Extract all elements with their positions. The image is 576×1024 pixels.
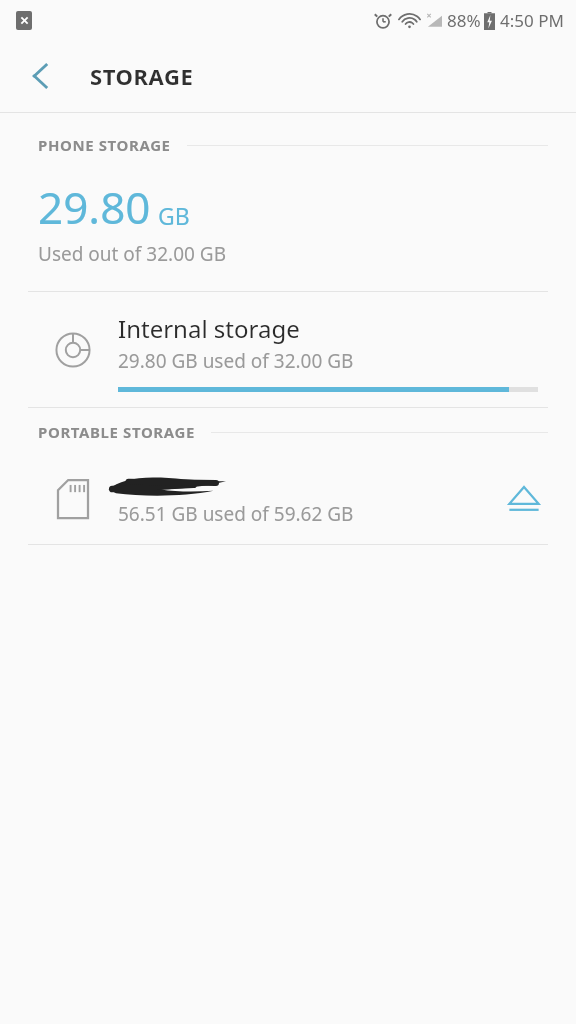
staticText: Internal storage bbox=[118, 312, 300, 345]
staticText: 29.80 GB used of 32.00 GB bbox=[118, 348, 354, 374]
staticText: 56.51 GB used of 59.62 GB bbox=[118, 501, 354, 527]
button[interactable]: Internal storage bbox=[0, 292, 576, 407]
staticText: PHONE STORAGE bbox=[38, 135, 171, 155]
staticText: GB bbox=[158, 200, 190, 231]
button[interactable]: Eject bbox=[496, 471, 552, 527]
staticText: Used out of 32.00 GB bbox=[38, 241, 227, 267]
staticText: 88% bbox=[447, 9, 481, 32]
staticText: PORTABLE STORAGE bbox=[38, 422, 195, 442]
staticText: STORAGE bbox=[90, 61, 194, 91]
button[interactable]: Back bbox=[14, 50, 66, 102]
staticText: 4:50 PM bbox=[500, 9, 564, 32]
button[interactable]: 56.51 GB used of 59.62 GB bbox=[0, 454, 576, 544]
staticText: 29.80 bbox=[38, 177, 151, 237]
